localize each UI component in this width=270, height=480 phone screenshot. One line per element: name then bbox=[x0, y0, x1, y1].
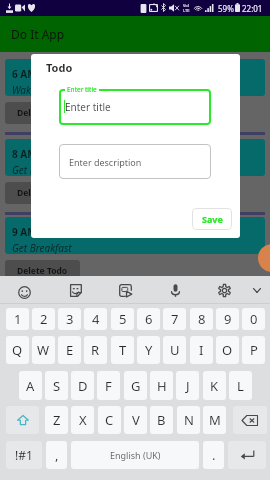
staticText: 0 bbox=[250, 310, 258, 328]
staticText: 8 bbox=[198, 310, 206, 328]
button[interactable]: 0 bbox=[242, 308, 265, 330]
button[interactable]: 2 bbox=[32, 308, 55, 330]
staticText: M bbox=[209, 411, 221, 429]
staticText: 6 bbox=[145, 310, 153, 328]
button[interactable]: C bbox=[98, 406, 121, 434]
button[interactable]: L bbox=[229, 371, 252, 400]
button[interactable]: 8 AM bbox=[5, 139, 265, 176]
button[interactable]: Enter title bbox=[59, 89, 211, 125]
button[interactable]: K bbox=[203, 371, 226, 400]
staticText: K bbox=[210, 377, 219, 395]
button[interactable]: H bbox=[150, 371, 173, 400]
staticText: Enter description bbox=[69, 156, 142, 168]
button[interactable]: Delete Todo bbox=[5, 102, 80, 124]
button[interactable]: Voice input bbox=[163, 278, 187, 302]
button[interactable]: W bbox=[32, 336, 55, 364]
button[interactable]: Add todo bbox=[258, 244, 270, 272]
button[interactable]: Backspace bbox=[233, 406, 267, 434]
button[interactable]: Y bbox=[137, 336, 160, 364]
button[interactable]: GIF bbox=[113, 278, 137, 302]
staticText: E bbox=[66, 341, 74, 359]
button[interactable]: Collapse bbox=[245, 278, 269, 302]
button[interactable]: R bbox=[84, 336, 107, 364]
button[interactable]: B bbox=[150, 406, 173, 434]
staticText: 6 AM bbox=[12, 67, 37, 81]
button[interactable]: M bbox=[203, 406, 226, 434]
button[interactable]: 8 bbox=[190, 308, 213, 330]
staticText: U bbox=[170, 341, 180, 359]
button[interactable]: Emoji bbox=[12, 280, 36, 304]
staticText: X bbox=[79, 411, 87, 429]
button[interactable]: Shift bbox=[6, 406, 39, 434]
button[interactable]: 6 AM bbox=[5, 59, 265, 96]
staticText: Enter title bbox=[65, 100, 111, 114]
staticText: S bbox=[53, 377, 61, 395]
button[interactable]: Z bbox=[45, 406, 68, 434]
staticText: T bbox=[119, 341, 127, 359]
staticText: Z bbox=[53, 411, 61, 429]
staticText: Q bbox=[12, 341, 23, 359]
button[interactable]: Save bbox=[192, 208, 232, 230]
button[interactable]: G bbox=[124, 371, 147, 400]
button[interactable]: E bbox=[58, 336, 81, 364]
staticText: H bbox=[157, 377, 167, 395]
staticText: F bbox=[105, 377, 112, 395]
button[interactable]: 1 bbox=[6, 308, 29, 330]
button[interactable]: 7 bbox=[163, 308, 186, 330]
button[interactable]: 9 AM bbox=[5, 217, 265, 254]
staticText: Save bbox=[202, 213, 223, 225]
staticText: P bbox=[250, 341, 258, 359]
staticText: Enter title bbox=[67, 85, 97, 94]
button[interactable]: Delete Todo bbox=[5, 182, 80, 204]
button[interactable]: V bbox=[124, 406, 147, 434]
button[interactable]: . bbox=[203, 441, 224, 469]
button[interactable]: N bbox=[177, 406, 200, 434]
staticText: L bbox=[237, 377, 244, 395]
staticText: !#1 bbox=[15, 447, 33, 463]
staticText: Delete Todo bbox=[17, 107, 68, 119]
staticText: I bbox=[199, 341, 204, 359]
staticText: Todo bbox=[46, 60, 73, 75]
staticText: G bbox=[131, 377, 141, 395]
staticText: D bbox=[78, 377, 88, 395]
staticText: C bbox=[105, 411, 114, 429]
button[interactable]: Q bbox=[6, 336, 29, 364]
staticText: LTE bbox=[183, 8, 190, 13]
button[interactable]: !#1 bbox=[6, 441, 42, 469]
button[interactable]: F bbox=[97, 371, 120, 400]
button[interactable]: 4 bbox=[84, 308, 107, 330]
button[interactable]: J bbox=[176, 371, 199, 400]
button[interactable]: 3 bbox=[58, 308, 81, 330]
button[interactable]: , bbox=[46, 441, 67, 469]
staticText: Delete Todo bbox=[17, 187, 68, 199]
button[interactable]: 9 bbox=[216, 308, 239, 330]
button[interactable]: U bbox=[163, 336, 186, 364]
button[interactable]: T bbox=[111, 336, 134, 364]
staticText: English (UK) bbox=[110, 449, 161, 461]
button[interactable]: Delete Todo bbox=[5, 260, 80, 282]
staticText: A bbox=[26, 377, 35, 395]
button[interactable]: Enter description bbox=[59, 144, 211, 179]
staticText: Y bbox=[145, 341, 153, 359]
button[interactable]: P bbox=[242, 336, 265, 364]
button[interactable]: Settings bbox=[212, 278, 236, 302]
button[interactable]: A bbox=[19, 371, 42, 400]
button[interactable]: English (UK) bbox=[71, 441, 199, 469]
button[interactable]: I bbox=[190, 336, 213, 364]
button[interactable]: S bbox=[45, 371, 68, 400]
staticText: 2 bbox=[40, 310, 48, 328]
staticText: , bbox=[55, 446, 59, 464]
staticText: 5 bbox=[119, 310, 127, 328]
staticText: N bbox=[184, 411, 194, 429]
staticText: Wake Up bbox=[12, 83, 51, 96]
staticText: B bbox=[157, 411, 166, 429]
button[interactable]: X bbox=[71, 406, 94, 434]
button[interactable]: O bbox=[216, 336, 239, 364]
staticText: 8 AM bbox=[12, 147, 37, 161]
button[interactable]: Enter bbox=[228, 441, 266, 469]
button[interactable]: D bbox=[71, 371, 94, 400]
button[interactable]: Stickers bbox=[63, 278, 87, 302]
button[interactable]: 5 bbox=[111, 308, 134, 330]
button[interactable]: 6 bbox=[137, 308, 160, 330]
staticText: O bbox=[222, 341, 233, 359]
